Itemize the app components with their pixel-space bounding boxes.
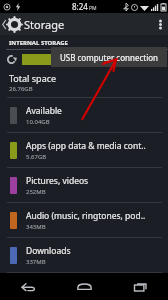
staticText: Downloads [26,245,71,257]
staticText: Apps (app data & media cont.. [26,140,146,152]
staticText: PM [89,5,97,12]
button[interactable]: Available [0,98,168,132]
staticText: 337MB [26,258,46,266]
button[interactable]: Recent apps [112,273,168,300]
button[interactable]: More options [152,13,168,35]
button[interactable]: Back [0,273,56,300]
button[interactable]: Apps (app data & media cont.. [0,133,168,167]
staticText: Total space [9,72,57,84]
staticText: 252MB [26,188,46,196]
button[interactable]: USB computer connection [51,47,167,67]
button[interactable]: Pictures, videos [0,168,168,202]
staticText: USB computer connection [60,52,158,63]
staticText: 5.67GB [26,153,47,161]
staticText: Available [26,105,62,117]
button[interactable]: Refresh [0,50,22,69]
button[interactable]: Downloads [0,238,168,272]
staticText: 26.76GB [9,85,33,93]
button[interactable]: Audio (music, ringtones, pod.. [0,203,168,237]
staticText: Pictures, videos [26,175,89,187]
staticText: 8:24 [72,1,88,12]
staticText: Storage [24,17,65,32]
button[interactable]: Home [56,273,112,300]
staticText: Audio (music, ringtones, pod.. [26,210,146,222]
staticText: 10.04GB [26,118,50,126]
staticText: 343MB [26,223,46,231]
staticText: INTERNAL STORAGE [9,39,68,47]
button[interactable]: Navigate up [0,13,24,35]
